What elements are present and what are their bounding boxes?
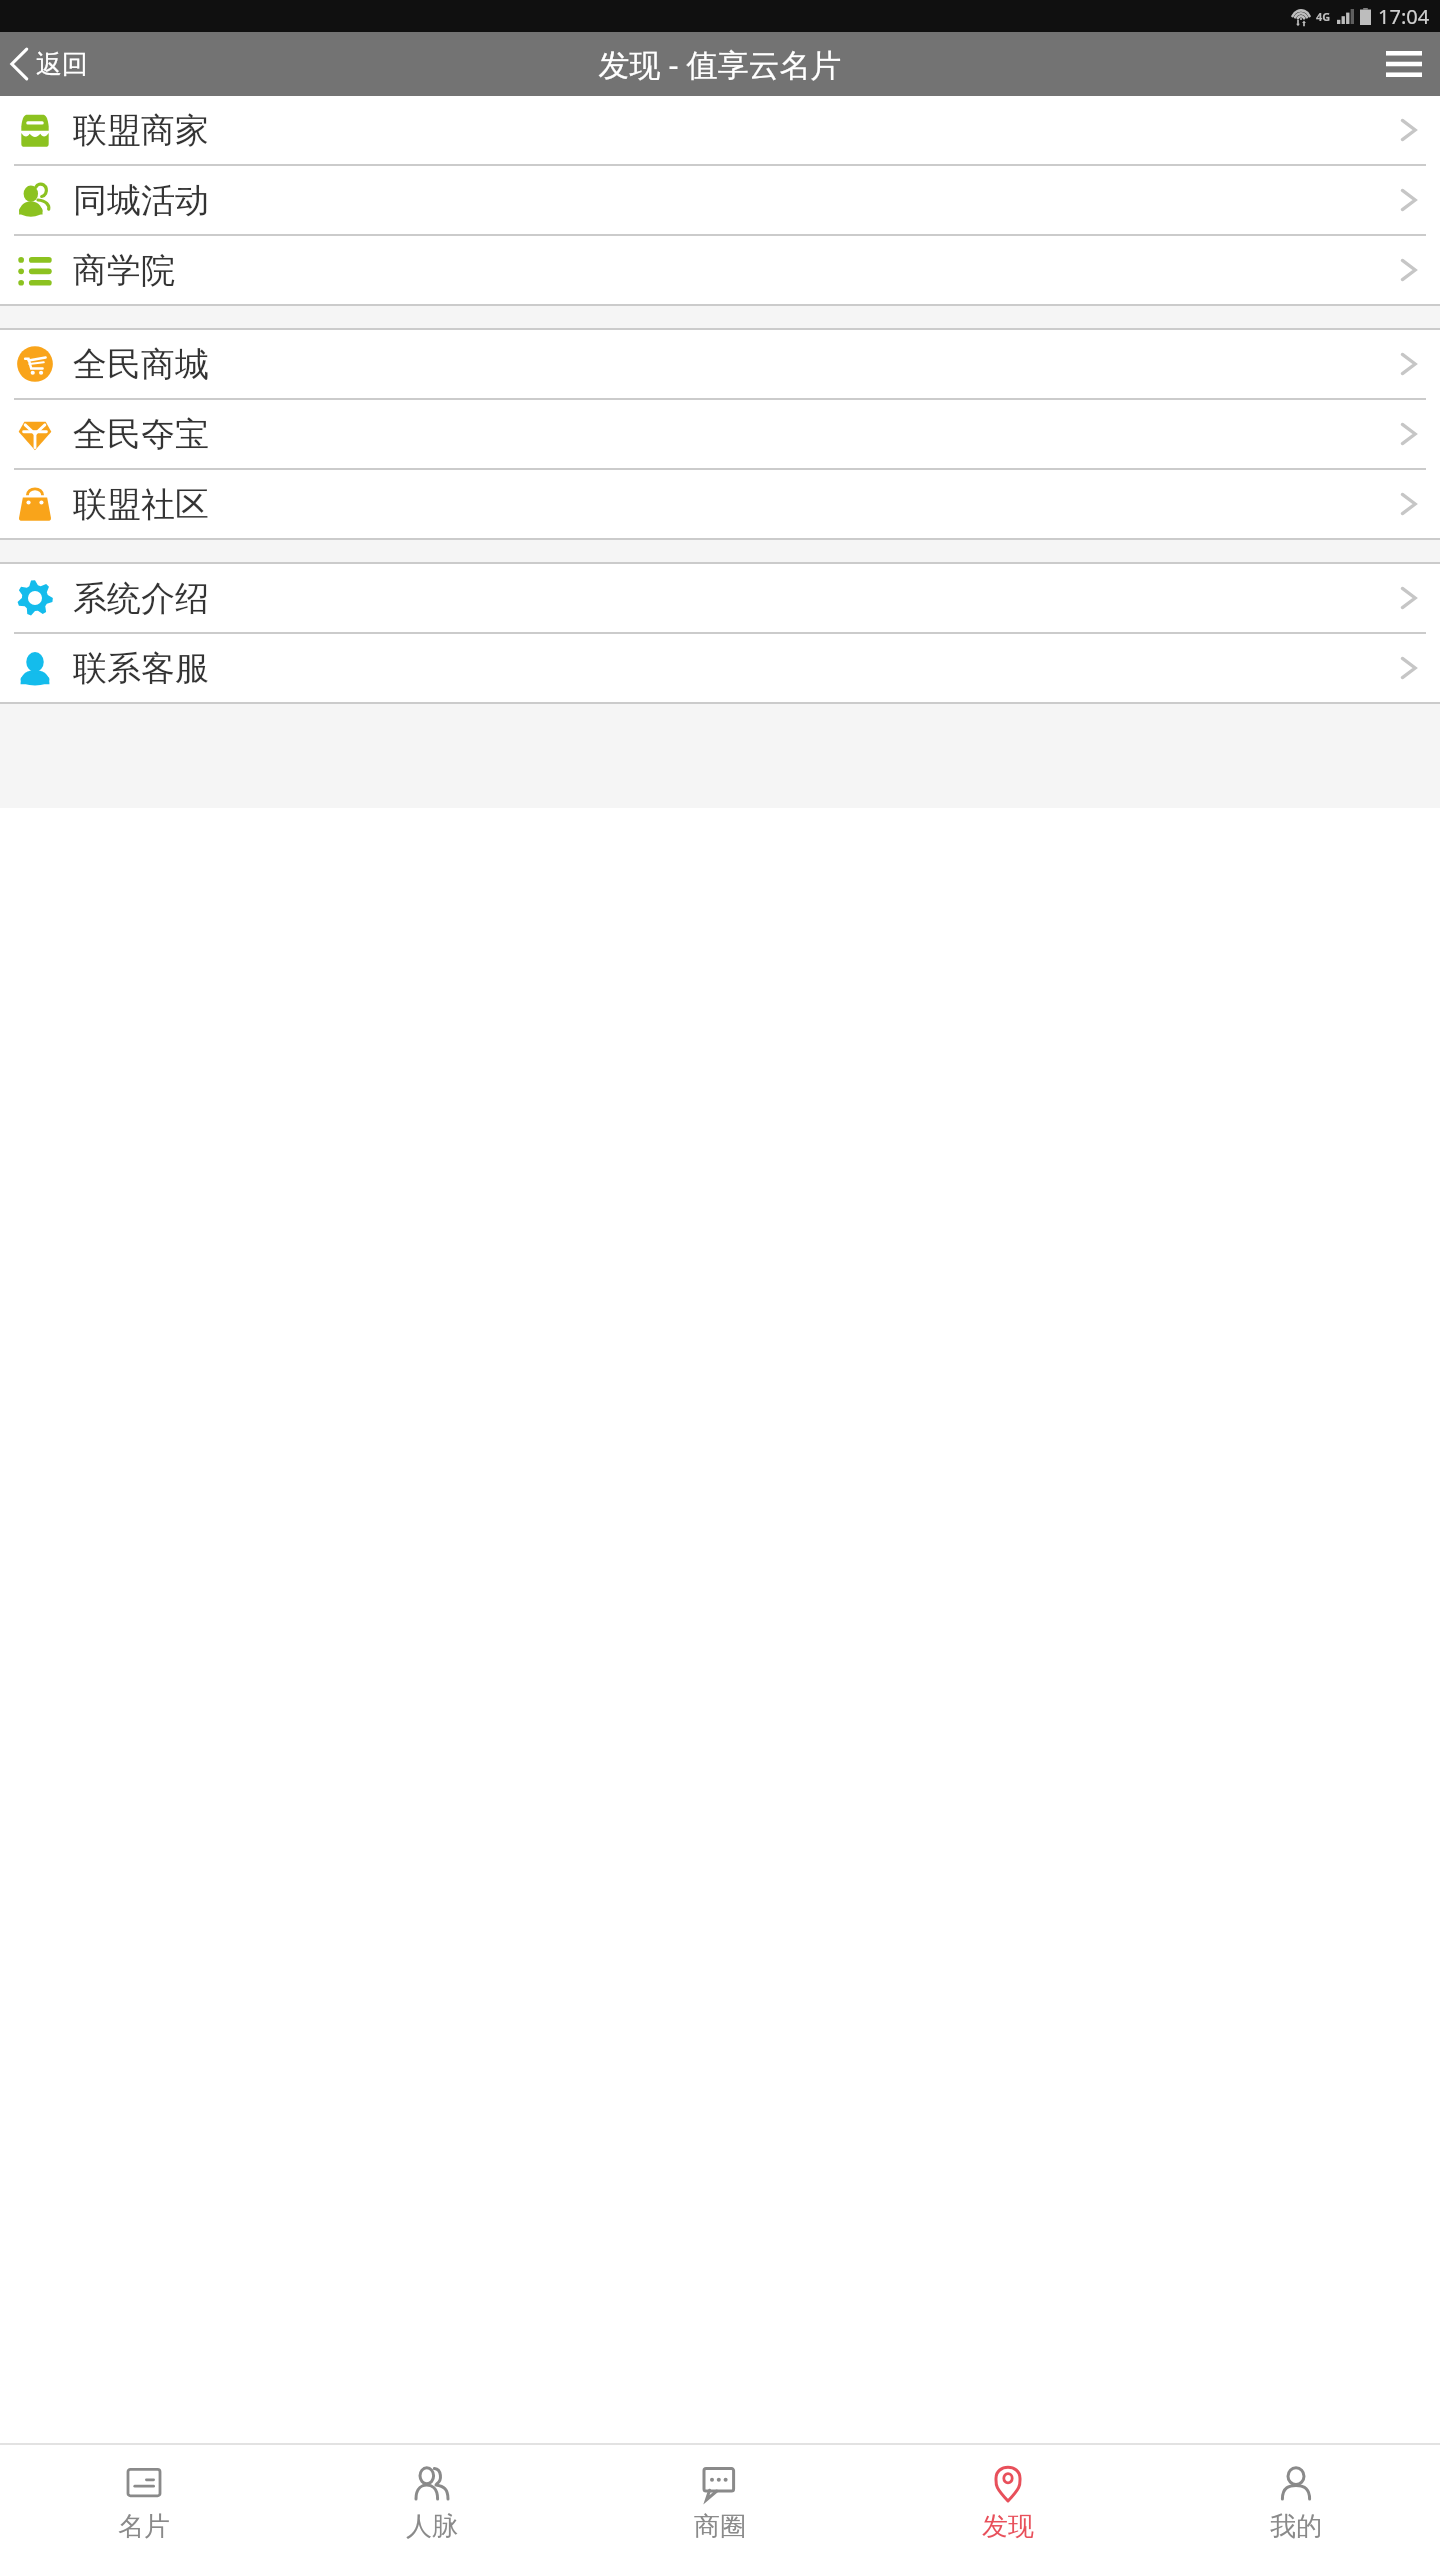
button[interactable]: 发现 [864, 2445, 1152, 2560]
button[interactable]: 名片 [0, 2445, 288, 2560]
staticText: 人脉 [406, 2510, 458, 2543]
button[interactable]: 联盟商家 [0, 96, 1440, 164]
staticText: 4G [1316, 9, 1331, 24]
staticText: 返回 [36, 48, 88, 81]
button[interactable]: 人脉 [288, 2445, 576, 2560]
staticText: 系统介绍 [73, 577, 209, 620]
staticText: 我的 [1270, 2510, 1322, 2543]
button[interactable]: 全民商城 [0, 330, 1440, 398]
staticText: 同城活动 [73, 179, 209, 222]
staticText: 17:04 [1378, 3, 1430, 30]
staticText: 全民夺宝 [73, 413, 209, 456]
staticText: 发现 [982, 2510, 1034, 2543]
staticText: 商圈 [694, 2510, 746, 2543]
staticText: 全民商城 [73, 343, 209, 386]
button[interactable]: 我的 [1152, 2445, 1440, 2560]
button[interactable]: 联系客服 [0, 634, 1440, 702]
button[interactable]: 商圈 [576, 2445, 864, 2560]
button[interactable]: 全民夺宝 [0, 400, 1440, 468]
staticText: 发现 - 值享云名片 [598, 43, 842, 85]
staticText: 联盟商家 [73, 109, 209, 152]
button[interactable]: 同城活动 [0, 166, 1440, 234]
button[interactable]: 商学院 [0, 236, 1440, 304]
staticText: 商学院 [73, 249, 175, 292]
staticText: 联盟社区 [73, 483, 209, 526]
button[interactable]: 返回 [0, 32, 102, 96]
button[interactable]: 联盟社区 [0, 470, 1440, 538]
button[interactable]: 系统介绍 [0, 564, 1440, 632]
staticText: 名片 [118, 2510, 170, 2543]
staticText: 联系客服 [73, 647, 209, 690]
button[interactable]: Menu [1368, 32, 1440, 96]
